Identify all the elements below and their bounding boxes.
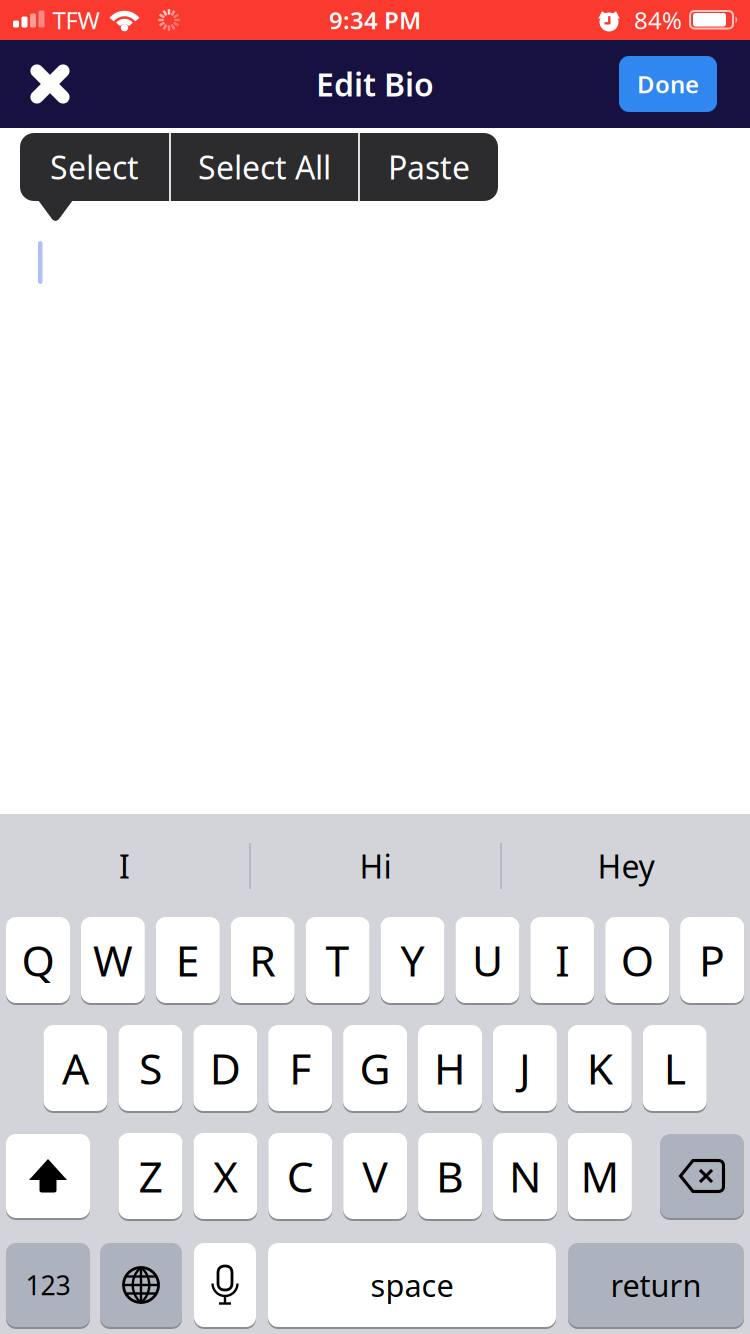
button[interactable]: space — [268, 1242, 556, 1328]
button[interactable]: F — [268, 1024, 332, 1112]
button[interactable]: H — [418, 1024, 482, 1112]
button[interactable]: Q — [6, 916, 70, 1004]
button[interactable]: Done — [619, 56, 717, 112]
button[interactable]: U — [455, 916, 519, 1004]
staticText: Hey — [597, 845, 654, 887]
button[interactable]: B — [418, 1132, 482, 1220]
staticText: P — [699, 932, 725, 988]
button[interactable]: Shift — [6, 1133, 90, 1219]
button[interactable]: Next keyboard — [100, 1242, 182, 1328]
staticText: E — [176, 932, 200, 988]
button[interactable]: J — [493, 1024, 557, 1112]
button[interactable]: Close — [27, 61, 73, 107]
button[interactable]: Y — [380, 916, 444, 1004]
button[interactable]: Select All — [171, 133, 358, 201]
staticText: TFW — [52, 4, 99, 36]
staticText: 123 — [25, 1267, 70, 1303]
staticText: X — [213, 1148, 238, 1204]
button[interactable]: Select — [20, 133, 169, 201]
staticText: N — [509, 1148, 541, 1204]
button[interactable]: E — [156, 916, 220, 1004]
button[interactable]: N — [493, 1132, 557, 1220]
staticText: S — [139, 1040, 162, 1096]
button[interactable]: Paste — [360, 133, 498, 201]
button[interactable]: R — [231, 916, 295, 1004]
staticText: Done — [637, 68, 699, 100]
staticText: Select All — [198, 146, 331, 188]
button[interactable]: Hi — [251, 822, 500, 910]
staticText: space — [370, 1265, 453, 1305]
staticText: Y — [400, 932, 424, 988]
staticText: H — [434, 1040, 466, 1096]
button[interactable]: G — [343, 1024, 407, 1112]
staticText: D — [210, 1040, 241, 1096]
staticText: B — [436, 1148, 464, 1204]
button[interactable]: W — [81, 916, 145, 1004]
button[interactable]: Z — [118, 1132, 182, 1220]
staticText: J — [519, 1040, 531, 1096]
button[interactable]: L — [643, 1024, 707, 1112]
staticText: Hi — [359, 845, 391, 887]
staticText: 84% — [634, 4, 682, 36]
button[interactable]: A — [43, 1024, 107, 1112]
staticText: C — [287, 1148, 314, 1204]
staticText: T — [326, 932, 350, 988]
button[interactable]: Delete — [660, 1133, 744, 1219]
staticText: R — [249, 932, 276, 988]
staticText: I — [555, 932, 569, 988]
staticText: U — [472, 932, 503, 988]
button[interactable]: Hey — [502, 822, 750, 910]
staticText: A — [62, 1040, 89, 1096]
staticText: K — [587, 1040, 613, 1096]
button[interactable]: I — [530, 916, 594, 1004]
staticText: I — [119, 845, 130, 887]
button[interactable]: X — [193, 1132, 257, 1220]
staticText: 9:34 PM — [329, 4, 421, 36]
button[interactable]: P — [680, 916, 744, 1004]
button[interactable]: D — [193, 1024, 257, 1112]
button[interactable]: Dictate — [194, 1242, 256, 1328]
button[interactable]: V — [343, 1132, 407, 1220]
staticText: Paste — [388, 146, 470, 188]
button[interactable]: Numbers — [6, 1242, 90, 1328]
button[interactable]: O — [605, 916, 669, 1004]
staticText: Z — [138, 1148, 162, 1204]
button[interactable]: return — [568, 1242, 744, 1328]
button[interactable]: K — [568, 1024, 632, 1112]
button[interactable]: C — [268, 1132, 332, 1220]
staticText: Q — [21, 932, 54, 988]
button[interactable]: I — [0, 822, 249, 910]
staticText: W — [93, 932, 133, 988]
button[interactable]: S — [118, 1024, 182, 1112]
staticText: F — [289, 1040, 311, 1096]
staticText: V — [362, 1148, 388, 1204]
button[interactable]: T — [306, 916, 370, 1004]
staticText: return — [610, 1265, 701, 1305]
button[interactable]: M — [568, 1132, 632, 1220]
staticText: G — [360, 1040, 391, 1096]
staticText: L — [664, 1040, 686, 1096]
staticText: M — [580, 1148, 619, 1204]
staticText: O — [621, 932, 654, 988]
staticText: Edit Bio — [316, 63, 434, 105]
staticText: Select — [50, 146, 139, 188]
